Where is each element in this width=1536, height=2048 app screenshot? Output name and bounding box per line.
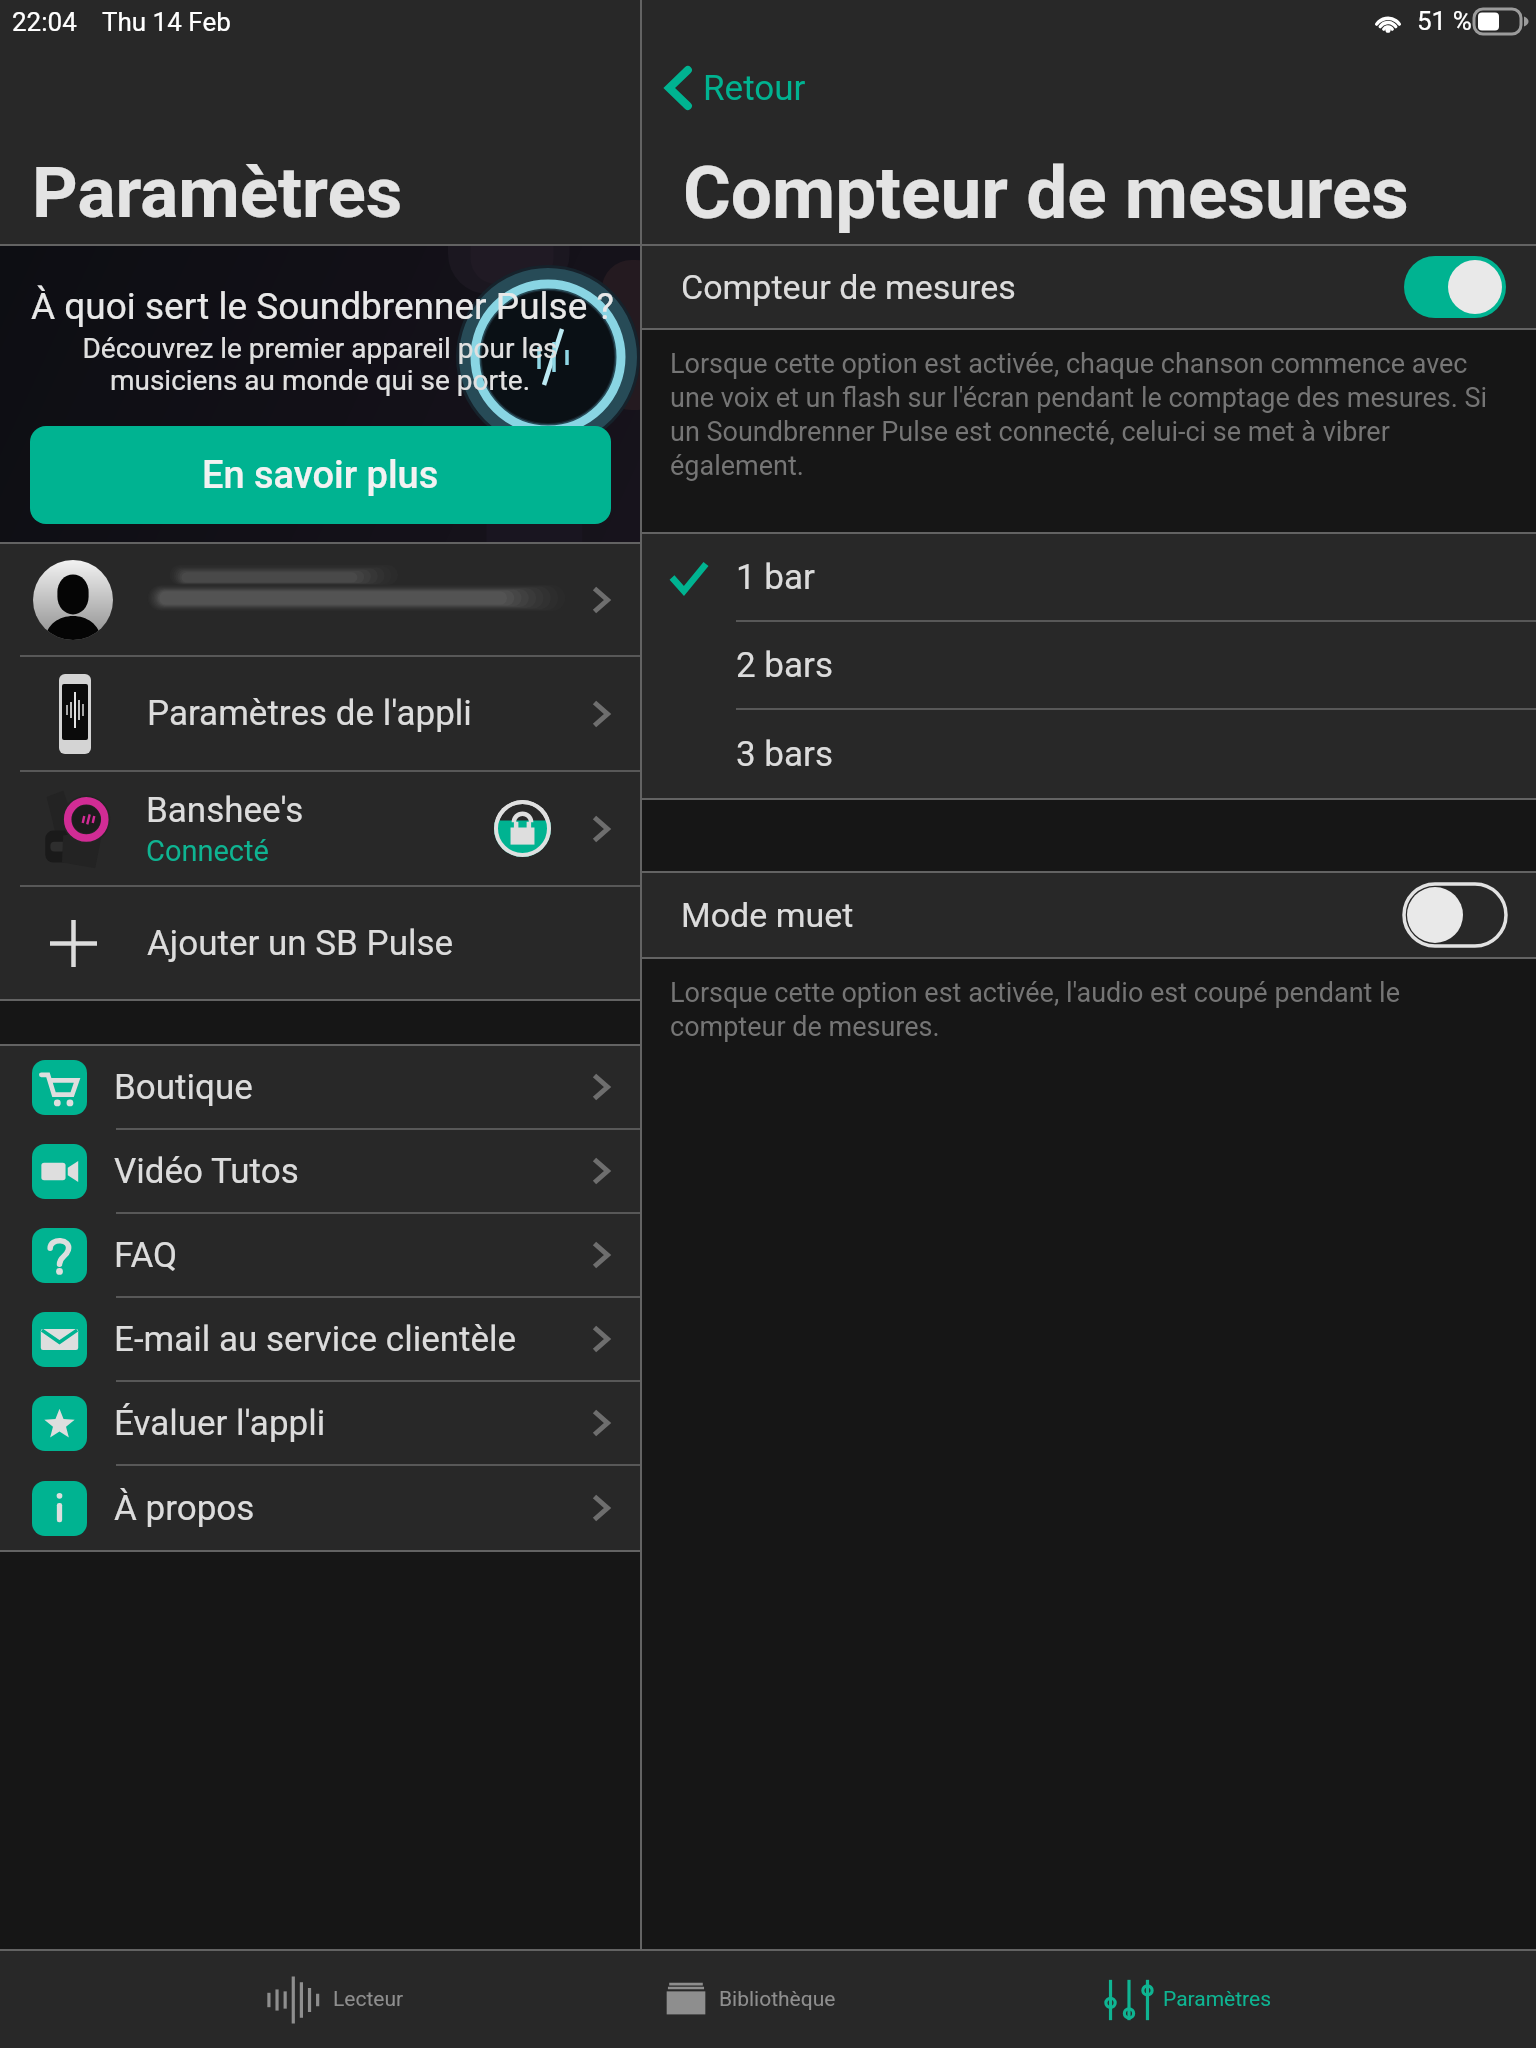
staticText: Ajouter un SB Pulse	[147, 923, 454, 964]
staticText: 1 bar	[736, 557, 815, 598]
button[interactable]: 3 bars	[642, 710, 1536, 798]
staticText: Connecté	[146, 834, 269, 868]
staticText: 3 bars	[736, 734, 833, 775]
button[interactable]: Mode muet	[642, 873, 1536, 957]
button[interactable]: 2 bars	[642, 622, 1536, 708]
staticText: Évaluer l'appli	[114, 1403, 326, 1444]
staticText: À quoi sert le Soundbrenner Pulse ?	[31, 285, 614, 328]
other: Ouvrir	[592, 700, 610, 728]
staticText: Compteur de mesures	[681, 267, 1016, 307]
button[interactable]: Retour	[665, 66, 806, 110]
staticText: 2 bars	[736, 645, 833, 686]
staticText: E-mail au service clientèle	[114, 1319, 517, 1360]
staticText: 51 %	[1417, 6, 1472, 36]
other: Ouvrir	[592, 815, 610, 843]
staticText: Lorsque cette option est activée, l'audi…	[670, 977, 1500, 1043]
button[interactable]: Ouvrir	[0, 544, 640, 655]
button[interactable]: Compteur de mesures	[642, 246, 1536, 328]
button[interactable]: Ajouter un SB Pulse	[0, 887, 640, 999]
button[interactable]: Paramètres	[1024, 1951, 1536, 2048]
button[interactable]: Bibliothèque	[512, 1951, 1024, 2048]
button[interactable]: Paramètres de l'appli	[0, 657, 640, 770]
other: Ouvrir	[592, 1494, 610, 1522]
button[interactable]: 1 bar	[642, 534, 1536, 620]
staticText: À propos	[114, 1488, 255, 1529]
button[interactable]: E-mail au service clientèle	[0, 1298, 640, 1380]
button[interactable]: Vidéo Tutos	[0, 1130, 640, 1212]
other: Ouvrir	[592, 1241, 610, 1269]
other: Ouvrir	[592, 1157, 610, 1185]
button[interactable]: En savoir plus	[30, 426, 611, 524]
button[interactable]: Boutique	[0, 1046, 640, 1128]
staticText: Retour	[703, 68, 806, 109]
staticText: FAQ	[114, 1235, 178, 1276]
button[interactable]: Banshee's	[0, 772, 640, 885]
staticText: Boutique	[114, 1067, 253, 1108]
other: Verrouillé	[494, 800, 551, 857]
staticText: 22:04	[12, 7, 77, 37]
staticText: Bibliothèque	[719, 1987, 836, 2012]
staticText: Paramètres de l'appli	[147, 693, 472, 734]
staticText: Découvrez le premier appareil pour les m…	[82, 332, 558, 397]
button[interactable]: FAQ	[0, 1214, 640, 1296]
staticText: Banshee's	[146, 790, 304, 831]
staticText: En savoir plus	[202, 453, 439, 498]
staticText: Paramètres	[1163, 1987, 1272, 2012]
staticText: Vidéo Tutos	[114, 1151, 299, 1192]
button[interactable]: À propos	[0, 1466, 640, 1550]
staticText: Compteur de mesures	[683, 150, 1409, 236]
staticText: Thu 14 Feb	[102, 7, 231, 37]
staticText: Lorsque cette option est activée, chaque…	[670, 348, 1500, 482]
staticText: Mode muet	[681, 895, 854, 935]
staticText: Paramètres	[32, 151, 403, 234]
button[interactable]: Évaluer l'appli	[0, 1382, 640, 1464]
other: Ouvrir	[592, 1325, 610, 1353]
other: Ouvrir	[592, 1073, 610, 1101]
button[interactable]: Lecteur	[0, 1951, 512, 2048]
staticText: Lecteur	[333, 1987, 404, 2012]
other: Ouvrir	[592, 1409, 610, 1437]
other: Ouvrir	[592, 586, 610, 614]
